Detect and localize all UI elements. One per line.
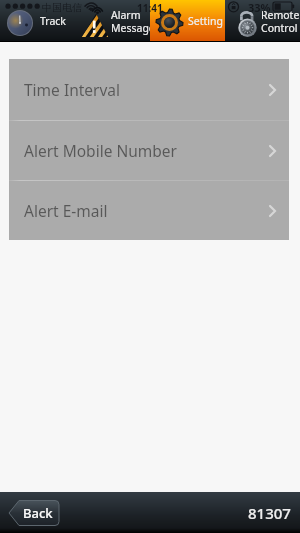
staticText: Alert E-mail: [24, 200, 108, 221]
button[interactable]: Setting: [150, 0, 225, 42]
button[interactable]: Remote Control: [225, 0, 300, 42]
button[interactable]: Time Interval: [9, 59, 289, 120]
staticText: 33%: [248, 0, 271, 14]
staticText: 11:41: [137, 1, 163, 15]
button[interactable]: Alert E-mail: [9, 181, 289, 240]
button[interactable]: Alarm Message: [75, 0, 150, 42]
staticText: Time Interval: [24, 79, 121, 100]
staticText: Remote Control: [261, 8, 300, 35]
staticText: Alarm Message: [111, 8, 155, 35]
button[interactable]: Alert Mobile Number: [9, 121, 289, 180]
staticText: Alert Mobile Number: [24, 140, 177, 161]
staticText: Setting: [188, 14, 223, 28]
staticText: Track: [40, 14, 66, 28]
button[interactable]: Track: [0, 0, 75, 42]
staticText: Back: [23, 504, 53, 522]
staticText: 81307: [248, 503, 291, 523]
staticText: 中国电信: [42, 1, 82, 14]
button[interactable]: Back: [9, 500, 59, 526]
